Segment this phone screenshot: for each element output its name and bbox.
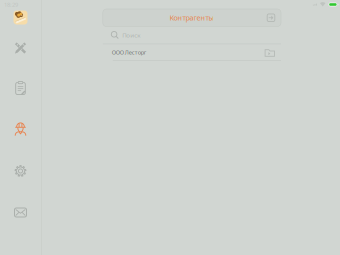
button[interactable]: Заказы	[0, 78, 41, 98]
button[interactable]: Почта	[0, 202, 41, 222]
staticText: Поиск	[122, 31, 140, 39]
staticText: 18:29	[4, 0, 18, 8]
staticText: ООО Лесторг	[112, 48, 147, 56]
button[interactable]: Контрагенты	[103, 9, 281, 26]
button[interactable]: Поиск	[103, 26, 281, 43]
button[interactable]: ООО Лесторг	[103, 44, 281, 61]
staticText: Контрагенты	[169, 13, 214, 23]
button[interactable]: Производство	[0, 38, 41, 58]
button[interactable]: Настройки	[0, 161, 41, 181]
button[interactable]: Контрагенты	[0, 119, 41, 139]
